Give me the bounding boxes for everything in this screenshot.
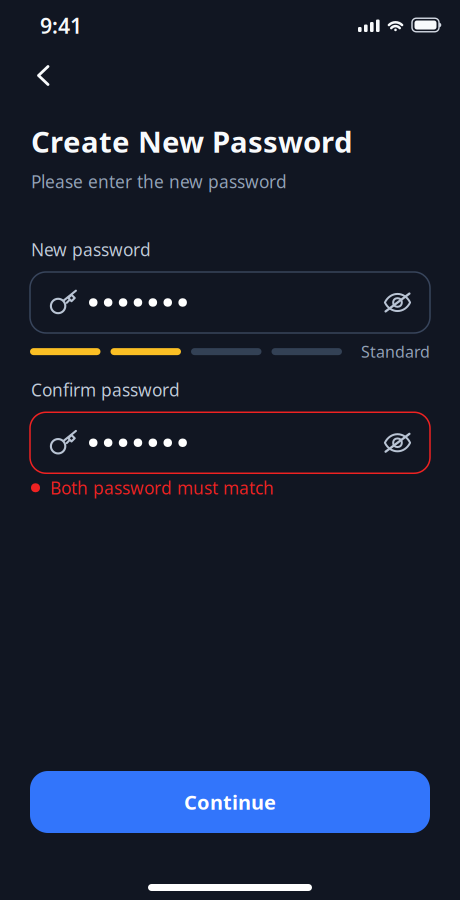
staticText: Continue <box>184 789 276 815</box>
staticText: Please enter the new password <box>31 170 287 193</box>
staticText: Create New Password <box>31 122 353 161</box>
staticText: Both password must match <box>50 476 274 499</box>
button[interactable]: Show password <box>374 416 430 469</box>
staticText: Standard <box>361 341 430 362</box>
button[interactable]: Back <box>0 48 73 103</box>
button[interactable]: Show password <box>374 276 430 329</box>
staticText: New password <box>31 238 151 261</box>
staticText: Confirm password <box>31 378 180 401</box>
button[interactable]: Continue <box>30 771 430 833</box>
staticText: 9:41 <box>40 11 82 40</box>
